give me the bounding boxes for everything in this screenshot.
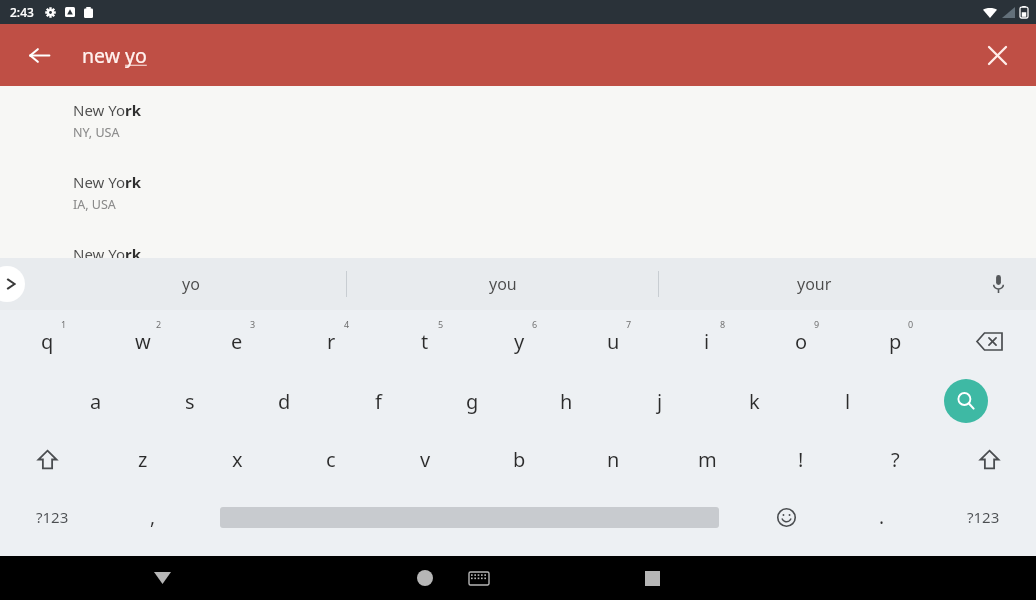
button[interactable]: v <box>378 430 472 488</box>
staticText: New York <box>73 172 142 192</box>
button[interactable]: Home <box>401 556 449 600</box>
button[interactable]: Shift <box>942 430 1036 488</box>
button[interactable]: k <box>707 372 801 430</box>
staticText: ! <box>798 446 804 473</box>
button[interactable]: a <box>48 372 143 430</box>
staticText: j <box>657 388 663 415</box>
button[interactable]: Recent apps <box>628 556 676 600</box>
button[interactable]: x <box>190 430 284 488</box>
staticText: 7 <box>626 318 632 330</box>
button[interactable]: w <box>95 310 190 372</box>
staticText: n <box>607 446 620 473</box>
button[interactable]: d <box>237 372 331 430</box>
staticText: o <box>795 328 808 355</box>
button[interactable]: o <box>754 310 848 372</box>
staticText: 2 <box>156 318 162 330</box>
button[interactable]: t <box>378 310 472 372</box>
staticText: w <box>135 328 151 355</box>
staticText: b <box>513 446 526 473</box>
button[interactable]: j <box>613 372 707 430</box>
staticText: r <box>327 328 336 355</box>
button[interactable]: Search <box>895 372 1036 430</box>
button[interactable]: ! <box>754 430 848 488</box>
staticText: NY, USA <box>73 124 120 141</box>
button[interactable]: ?123 <box>0 488 105 546</box>
button[interactable]: q <box>0 310 95 372</box>
button[interactable]: s <box>143 372 237 430</box>
staticText: ? <box>891 446 900 473</box>
button[interactable]: f <box>331 372 425 430</box>
staticText: c <box>326 446 336 473</box>
button[interactable]: you <box>347 258 658 310</box>
staticText: f <box>375 388 382 415</box>
button[interactable]: Emoji <box>738 488 834 546</box>
staticText: k <box>749 388 760 415</box>
staticText: l <box>845 388 851 415</box>
button[interactable]: New York <box>0 230 1036 258</box>
staticText: t <box>421 328 429 355</box>
button[interactable]: i <box>660 310 754 372</box>
button[interactable]: m <box>660 430 754 488</box>
button[interactable]: Space <box>201 488 738 546</box>
button[interactable]: Expand suggestions <box>0 266 25 302</box>
staticText: 8 <box>720 318 726 330</box>
staticText: x <box>232 446 243 473</box>
button[interactable]: Hide keyboard <box>138 556 186 600</box>
button[interactable]: ?123 <box>930 488 1036 546</box>
button[interactable]: g <box>425 372 519 430</box>
button[interactable]: Voice input <box>980 266 1016 302</box>
staticText: 3 <box>250 318 256 330</box>
staticText: s <box>185 388 195 415</box>
button[interactable]: p <box>848 310 942 372</box>
staticText: 5 <box>438 318 444 330</box>
staticText: y <box>514 328 525 355</box>
button[interactable]: z <box>95 430 190 488</box>
button[interactable]: Shift <box>0 430 95 488</box>
staticText: h <box>560 388 573 415</box>
button[interactable]: e <box>190 310 284 372</box>
button[interactable]: yo <box>36 258 346 310</box>
staticText: q <box>41 328 54 355</box>
staticText: 2:43 <box>10 4 34 20</box>
button[interactable]: Back <box>18 34 60 76</box>
staticText: g <box>466 388 479 415</box>
button[interactable]: your <box>659 258 970 310</box>
staticText: i <box>704 328 710 355</box>
staticText: , <box>150 504 156 530</box>
button[interactable]: b <box>472 430 566 488</box>
staticText: you <box>489 273 517 295</box>
button[interactable]: New York <box>0 86 1036 158</box>
staticText: 1 <box>61 318 67 330</box>
staticText: v <box>420 446 431 473</box>
staticText: u <box>607 328 620 355</box>
staticText: m <box>698 446 717 473</box>
staticText: p <box>889 328 902 355</box>
staticText: your <box>797 273 832 295</box>
staticText: 9 <box>814 318 820 330</box>
button[interactable]: Switch keyboard <box>455 556 503 600</box>
button[interactable]: , <box>105 488 201 546</box>
staticText: a <box>90 388 102 415</box>
button[interactable]: l <box>801 372 895 430</box>
button[interactable]: n <box>566 430 660 488</box>
staticText: ?123 <box>967 507 1000 527</box>
staticText: New York <box>73 244 142 258</box>
staticText: . <box>879 504 885 530</box>
button[interactable]: Backspace <box>942 310 1036 372</box>
staticText: New York <box>73 100 142 120</box>
staticText: IA, USA <box>73 196 116 213</box>
button[interactable]: ? <box>848 430 942 488</box>
staticText: d <box>278 388 291 415</box>
button[interactable]: c <box>284 430 378 488</box>
staticText: ?123 <box>36 507 69 527</box>
button[interactable]: r <box>284 310 378 372</box>
button[interactable]: y <box>472 310 566 372</box>
staticText: yo <box>182 273 200 295</box>
button[interactable]: Clear search <box>976 34 1018 76</box>
button[interactable]: h <box>519 372 613 430</box>
button[interactable]: New York <box>0 158 1036 230</box>
staticText: z <box>138 446 148 473</box>
button[interactable]: u <box>566 310 660 372</box>
button[interactable]: . <box>834 488 930 546</box>
staticText: 0 <box>908 318 914 330</box>
